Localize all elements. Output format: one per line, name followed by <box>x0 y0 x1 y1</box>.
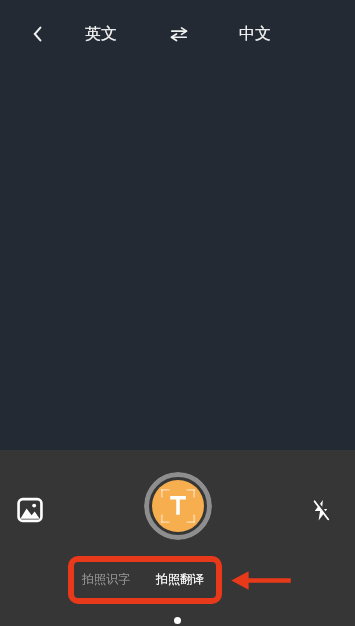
staticText: 中文 <box>239 24 271 44</box>
staticText: 拍照识字 <box>82 571 130 586</box>
button[interactable]: Gallery <box>12 492 48 528</box>
button[interactable]: 中文 <box>225 14 285 54</box>
button[interactable]: 拍照翻译 <box>149 562 211 594</box>
button[interactable]: 拍照识字 <box>75 562 137 594</box>
button[interactable]: Capture <box>144 472 212 540</box>
staticText: 拍照翻译 <box>156 571 204 586</box>
button[interactable]: Swap languages <box>159 14 199 54</box>
button[interactable]: Flash off <box>303 492 339 528</box>
button[interactable]: Back <box>18 14 58 54</box>
button[interactable]: 英文 <box>71 14 131 54</box>
staticText: 英文 <box>85 24 117 44</box>
